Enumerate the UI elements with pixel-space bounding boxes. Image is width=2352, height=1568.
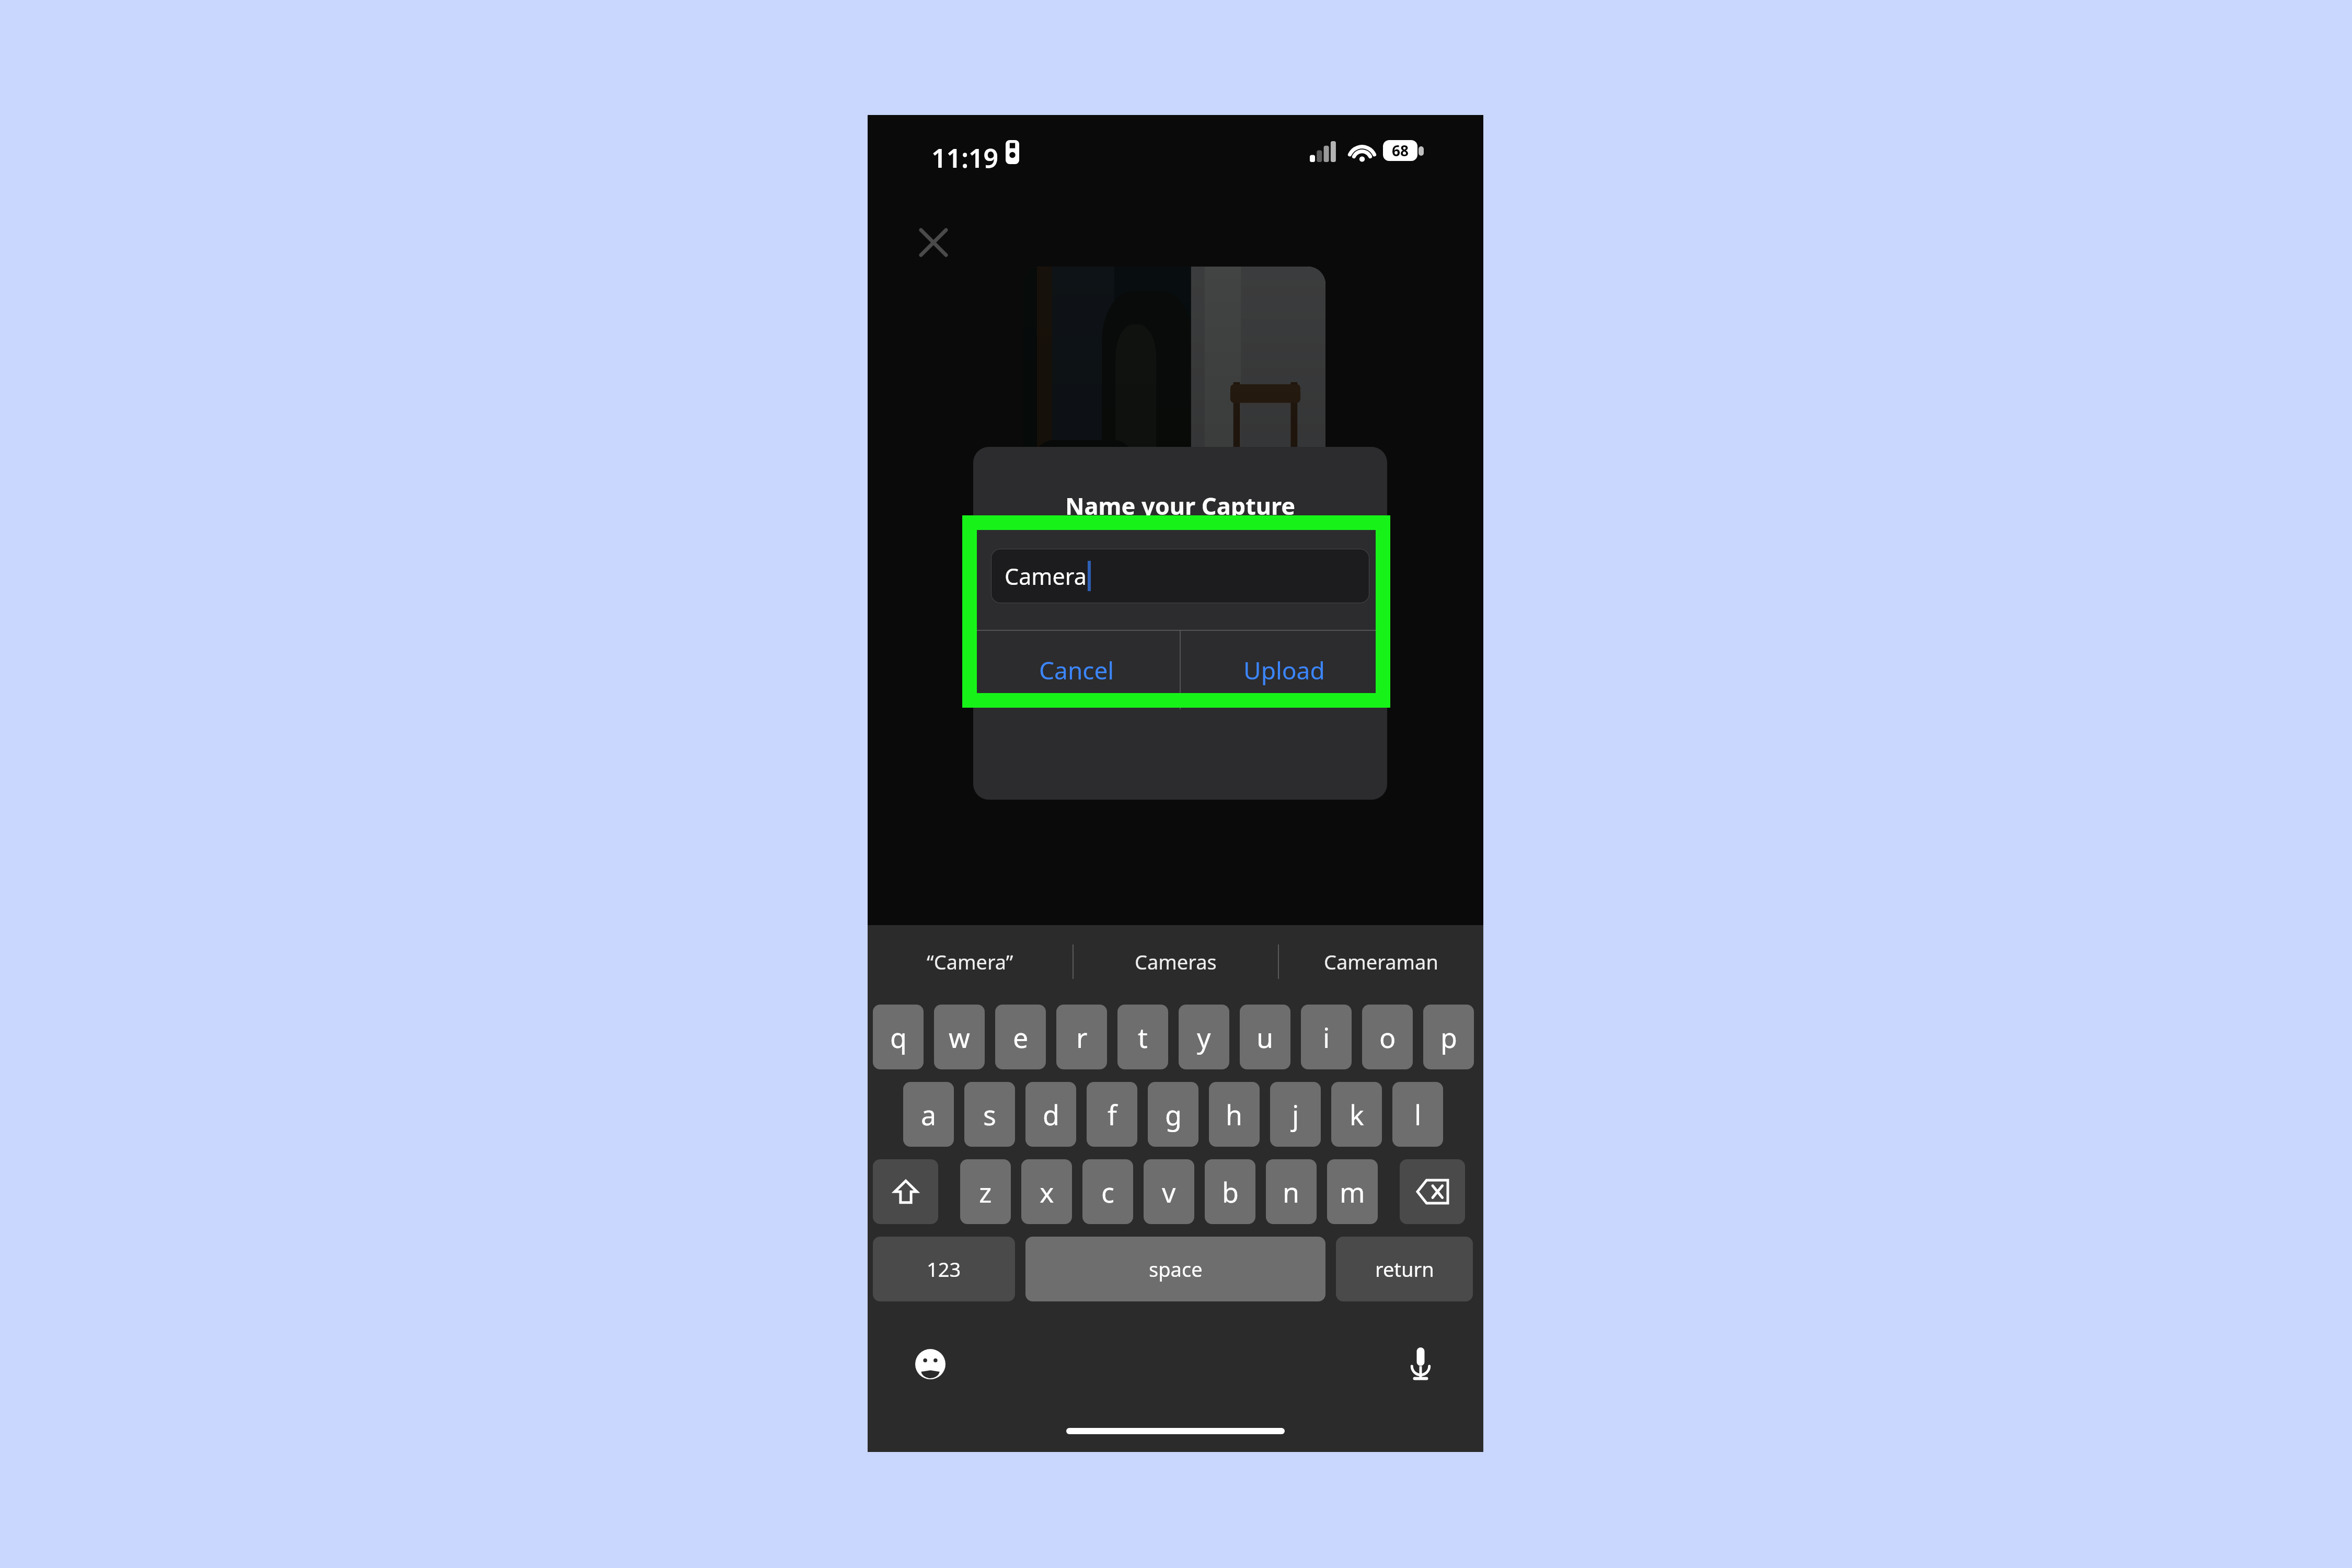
staticText: 11:19: [931, 140, 999, 176]
button[interactable]: Cameraman: [1279, 925, 1483, 998]
button[interactable]: “Camera”: [868, 925, 1073, 998]
staticText: Camera: [1005, 561, 1087, 592]
staticText: u: [1256, 1019, 1274, 1056]
button[interactable]: return: [1336, 1237, 1473, 1301]
button[interactable]: space: [1025, 1237, 1325, 1301]
staticText: f: [1108, 1096, 1117, 1133]
staticText: w: [949, 1019, 970, 1056]
button[interactable]: 123: [873, 1237, 1015, 1301]
button[interactable]: j: [1270, 1082, 1321, 1147]
staticText: k: [1350, 1096, 1364, 1133]
staticText: x: [1040, 1173, 1054, 1210]
staticText: h: [1226, 1096, 1243, 1133]
staticText: “Camera”: [927, 948, 1013, 975]
staticText: l: [1414, 1096, 1422, 1133]
staticText: c: [1101, 1173, 1114, 1210]
staticText: g: [1165, 1096, 1182, 1133]
staticText: p: [1440, 1019, 1457, 1056]
button[interactable]: s: [964, 1082, 1015, 1147]
button[interactable]: w: [934, 1005, 985, 1069]
staticText: Cameraman: [1324, 948, 1438, 975]
button[interactable]: d: [1025, 1082, 1076, 1147]
button[interactable]: z: [960, 1159, 1011, 1224]
button[interactable]: i: [1301, 1005, 1352, 1069]
staticText: Cancel: [1039, 654, 1114, 687]
staticText: 68: [1392, 141, 1409, 160]
button[interactable]: u: [1240, 1005, 1290, 1069]
staticText: s: [983, 1096, 996, 1133]
button[interactable]: Dictate: [1394, 1338, 1447, 1390]
button[interactable]: y: [1179, 1005, 1229, 1069]
staticText: y: [1197, 1019, 1211, 1056]
staticText: j: [1292, 1096, 1299, 1133]
button[interactable]: Cameras: [1074, 925, 1278, 998]
button[interactable]: a: [903, 1082, 954, 1147]
staticText: m: [1340, 1173, 1365, 1210]
button[interactable]: o: [1362, 1005, 1413, 1069]
button[interactable]: l: [1392, 1082, 1443, 1147]
button[interactable]: c: [1082, 1159, 1133, 1224]
button[interactable]: h: [1209, 1082, 1260, 1147]
button[interactable]: e: [995, 1005, 1046, 1069]
staticText: t: [1138, 1019, 1148, 1056]
button[interactable]: x: [1021, 1159, 1072, 1224]
button[interactable]: r: [1056, 1005, 1107, 1069]
staticText: b: [1222, 1173, 1239, 1210]
button[interactable]: k: [1331, 1082, 1382, 1147]
staticText: Upload: [1243, 654, 1325, 687]
button[interactable]: m: [1327, 1159, 1378, 1224]
staticText: v: [1162, 1173, 1176, 1210]
staticText: q: [890, 1019, 907, 1056]
staticText: Cameras: [1135, 948, 1217, 975]
button[interactable]: Emoji: [904, 1338, 956, 1390]
staticText: o: [1379, 1019, 1396, 1056]
button[interactable]: q: [873, 1005, 924, 1069]
button[interactable]: n: [1266, 1159, 1317, 1224]
button[interactable]: t: [1117, 1005, 1168, 1069]
button[interactable]: g: [1148, 1082, 1198, 1147]
staticText: e: [1013, 1019, 1029, 1056]
staticText: 123: [927, 1255, 961, 1283]
staticText: n: [1283, 1173, 1300, 1210]
staticText: i: [1323, 1019, 1330, 1056]
button[interactable]: f: [1087, 1082, 1137, 1147]
staticText: r: [1076, 1019, 1088, 1056]
button[interactable]: Camera: [991, 549, 1369, 603]
button[interactable]: Close: [908, 217, 959, 268]
button[interactable]: b: [1205, 1159, 1255, 1224]
button[interactable]: Upload: [1181, 631, 1387, 709]
staticText: Name your Capture: [973, 490, 1387, 522]
button[interactable]: Shift: [873, 1159, 938, 1224]
staticText: return: [1375, 1255, 1434, 1283]
button[interactable]: Cancel: [973, 631, 1180, 709]
staticText: a: [921, 1096, 937, 1133]
staticText: space: [1149, 1255, 1203, 1283]
button[interactable]: p: [1423, 1005, 1474, 1069]
button[interactable]: Backspace: [1400, 1159, 1465, 1224]
staticText: z: [979, 1173, 992, 1210]
button[interactable]: v: [1144, 1159, 1194, 1224]
staticText: d: [1043, 1096, 1059, 1133]
